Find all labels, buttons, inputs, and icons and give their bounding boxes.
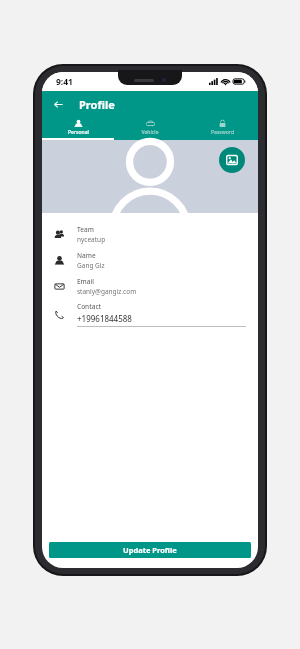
button[interactable]: Password — [186, 117, 258, 140]
button[interactable]: Name — [42, 247, 258, 273]
staticText: Vehicle — [141, 129, 159, 136]
staticText: Gang Giz — [77, 261, 105, 270]
staticText: Contact — [77, 302, 102, 311]
staticText: Name — [77, 251, 96, 260]
staticText: Update Profile — [123, 545, 177, 555]
button[interactable]: Team — [42, 221, 258, 247]
button[interactable]: Email — [42, 273, 258, 299]
staticText: Password — [211, 129, 234, 136]
button[interactable]: Contact — [42, 299, 258, 329]
button[interactable]: Change photo — [219, 147, 245, 173]
staticText: Team — [77, 225, 94, 234]
staticText: +19961844588 — [77, 313, 132, 324]
button[interactable]: Update Profile — [49, 542, 251, 558]
staticText: 9:41 — [56, 76, 73, 88]
button[interactable]: Back — [48, 94, 68, 114]
button[interactable]: Personal — [42, 117, 114, 140]
staticText: nyceatup — [77, 235, 106, 244]
staticText: Profile — [79, 97, 115, 112]
staticText: stanly@gangiz.com — [77, 287, 137, 296]
button[interactable]: Vehicle — [114, 117, 186, 140]
staticText: Email — [77, 277, 95, 286]
staticText: Personal — [68, 129, 89, 136]
